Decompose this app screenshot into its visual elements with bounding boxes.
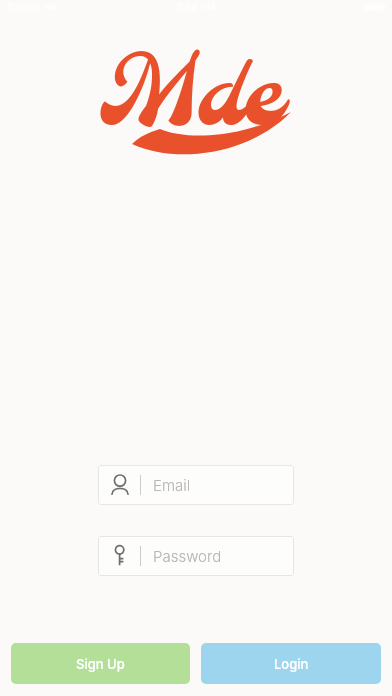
button[interactable]: Login — [201, 643, 381, 684]
staticText: Sign Up — [76, 656, 125, 672]
button[interactable]: Sign Up — [11, 643, 190, 684]
staticText: Password — [153, 547, 222, 565]
staticText: Mde — [103, 37, 281, 159]
button[interactable]: Email — [98, 465, 294, 505]
staticText: Email — [153, 476, 191, 494]
staticText: Login — [274, 656, 309, 672]
button[interactable]: Password — [98, 536, 294, 576]
